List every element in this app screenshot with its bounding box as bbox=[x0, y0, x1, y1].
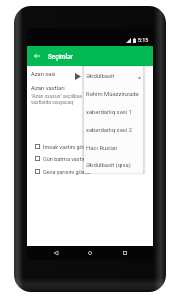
staticText: Azan səsi bbox=[31, 71, 56, 78]
button[interactable]: Home bbox=[84, 247, 96, 259]
staticText: Seçimlər bbox=[48, 53, 73, 60]
button[interactable]: Əbdülbasit bbox=[84, 67, 143, 85]
button[interactable]: Gün batma vaxtını göstər bbox=[27, 152, 153, 165]
button[interactable]: xəbərdarlıq səsi 1 bbox=[84, 103, 143, 121]
button[interactable]: Rəhim Müəzzinzadə bbox=[84, 85, 143, 103]
button[interactable]: Back bbox=[50, 247, 62, 259]
button[interactable]: Back bbox=[27, 46, 46, 66]
staticText: Hacı Ruslan bbox=[86, 145, 118, 152]
staticText: xəbərdarlıq səsi 2 bbox=[86, 127, 132, 134]
staticText: xəbərdarlıq səsi 1 bbox=[86, 109, 132, 116]
staticText: Gün batma vaxtını göstər bbox=[43, 156, 105, 162]
button[interactable]: Recents bbox=[119, 247, 131, 259]
button[interactable]: İmsak vaxtını göstər bbox=[27, 140, 153, 153]
button[interactable]: Əbdülbasit (qısa) bbox=[84, 157, 143, 173]
staticText: 5:15 bbox=[138, 37, 149, 43]
button[interactable]: Hacı Ruslan bbox=[84, 139, 143, 157]
staticText: İmsak vaxtını göstər bbox=[43, 144, 93, 150]
staticText: Əbdülbasit (qısa) bbox=[86, 162, 131, 169]
button[interactable]: Gecə yarısını göstər bbox=[27, 165, 153, 178]
staticText: "Azan oxusun" seçilibsə vaxtlarda oxuyac… bbox=[31, 93, 82, 105]
staticText: Azan vaxtları bbox=[31, 85, 65, 92]
staticText: Gecə yarısını göstər bbox=[43, 169, 92, 175]
button[interactable]: xəbərdarlıq səsi 2 bbox=[84, 121, 143, 139]
staticText: Rəhim Müəzzinzadə bbox=[86, 91, 139, 98]
staticText: Əbdülbasit bbox=[86, 73, 115, 80]
